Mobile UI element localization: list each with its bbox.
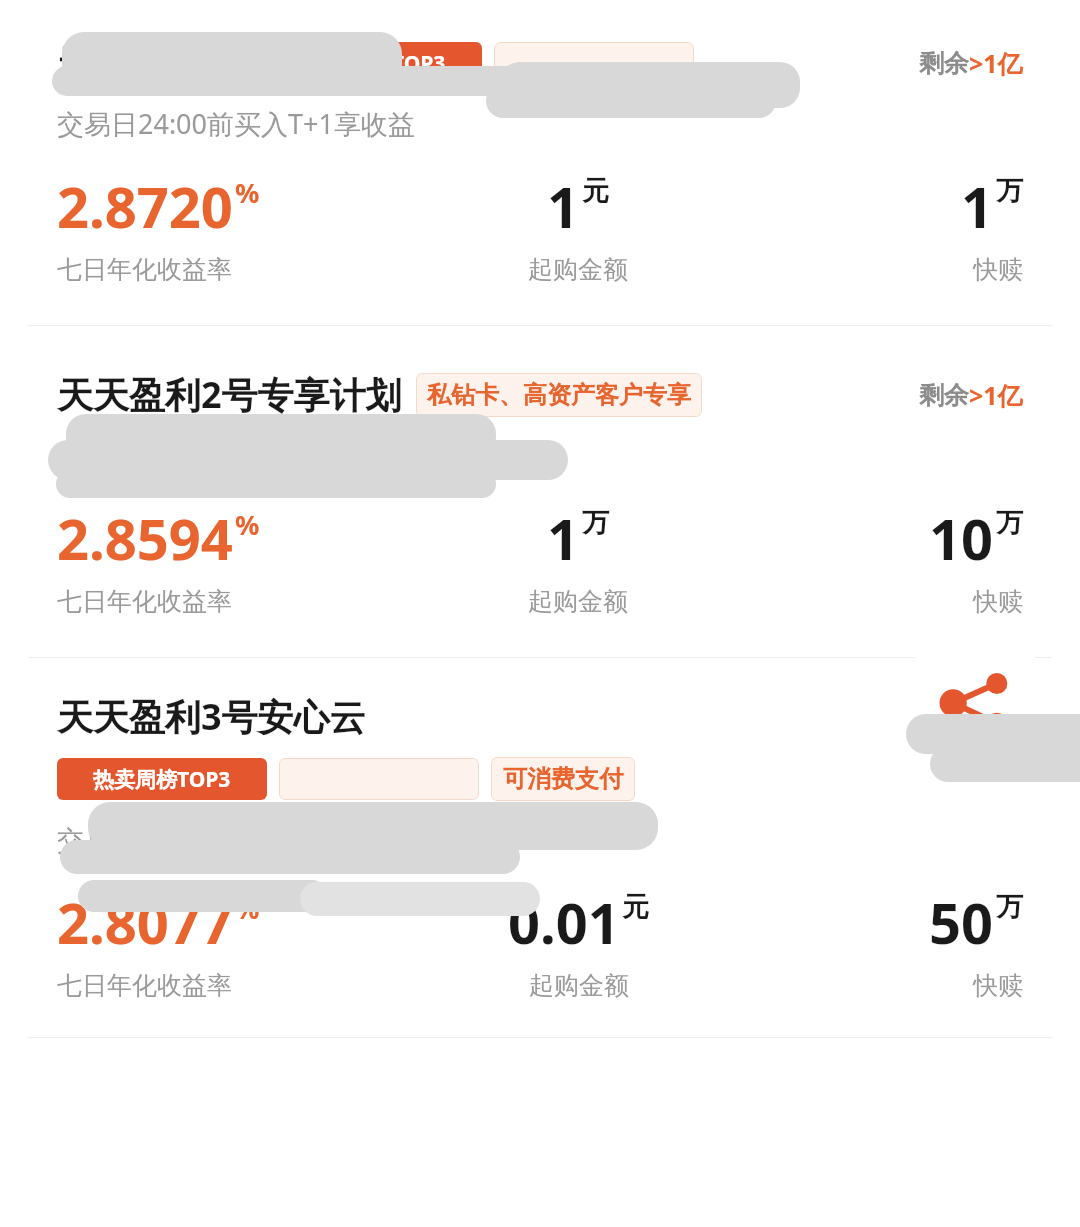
button[interactable]: 天天盈利2号专享计划 [0, 326, 1080, 657]
staticText: 起购金额 [528, 254, 628, 285]
staticText: 剩余 [919, 48, 969, 79]
staticText: 天天盈利2号专享计划 [57, 370, 402, 419]
staticText: 热卖周榜TOP3 [93, 765, 231, 794]
staticText: 快赎 [973, 586, 1023, 617]
staticText: 1 [961, 168, 994, 244]
button[interactable]: 热卖周榜TOP3 [57, 758, 267, 800]
staticText: % [235, 506, 260, 543]
staticText: 2.8594 [57, 500, 233, 576]
staticText: >1亿 [969, 700, 1023, 734]
staticText: 元 [622, 890, 649, 924]
staticText: 2.8077 [57, 884, 233, 960]
staticText: 1 [547, 168, 580, 244]
staticText: 元 [582, 174, 609, 208]
staticText: 万 [996, 174, 1023, 208]
staticText: 2.8720 [57, 168, 233, 244]
staticText: 50 [929, 884, 994, 960]
button[interactable]: Share [900, 628, 1050, 778]
staticText: 天天盈利3号安心云 [57, 692, 366, 741]
staticText: 1 [547, 500, 580, 576]
staticText: >1亿 [969, 378, 1023, 412]
staticText: 万 [582, 506, 609, 540]
staticText: 万 [996, 890, 1023, 924]
staticText: 七日年化收益率 [57, 254, 232, 285]
button[interactable] [494, 42, 694, 84]
staticText: % [235, 174, 260, 211]
button[interactable]: 天天盈利3号安心云 [0, 658, 1080, 1037]
staticText: 起购金额 [529, 970, 629, 1001]
staticText: 私钻卡、高资产客户专享 [427, 380, 691, 410]
staticText: 交易日24:00前买入T+1享收益 [57, 821, 415, 858]
staticText: 0.01 [508, 884, 620, 960]
button[interactable] [279, 758, 479, 800]
button[interactable]: 天天盈利1号 [0, 0, 1080, 325]
staticText: 万 [996, 506, 1023, 540]
staticText: 可消费支付 [503, 764, 623, 794]
staticText: 热卖周榜TOP3 [308, 49, 446, 78]
staticText: 交易日24:00前买入T+1享收益 [57, 105, 415, 142]
button[interactable]: 可消费支付 [503, 757, 623, 801]
staticText: 10 [929, 500, 994, 576]
button[interactable]: 热卖周榜TOP3 [272, 42, 482, 84]
staticText: 起购金额 [528, 586, 628, 617]
staticText: 剩余 [919, 702, 969, 733]
staticText: 七日年化收益率 [57, 586, 232, 617]
staticText: 天天盈利1号 [57, 38, 258, 87]
staticText: >1亿 [969, 46, 1023, 80]
staticText: 快赎 [973, 254, 1023, 285]
staticText: 快赎 [973, 970, 1023, 1001]
staticText: 七日年化收益率 [57, 970, 232, 1001]
staticText: 剩余 [919, 380, 969, 411]
button[interactable]: 私钻卡、高资产客户专享 [427, 373, 691, 417]
staticText: % [235, 890, 260, 927]
